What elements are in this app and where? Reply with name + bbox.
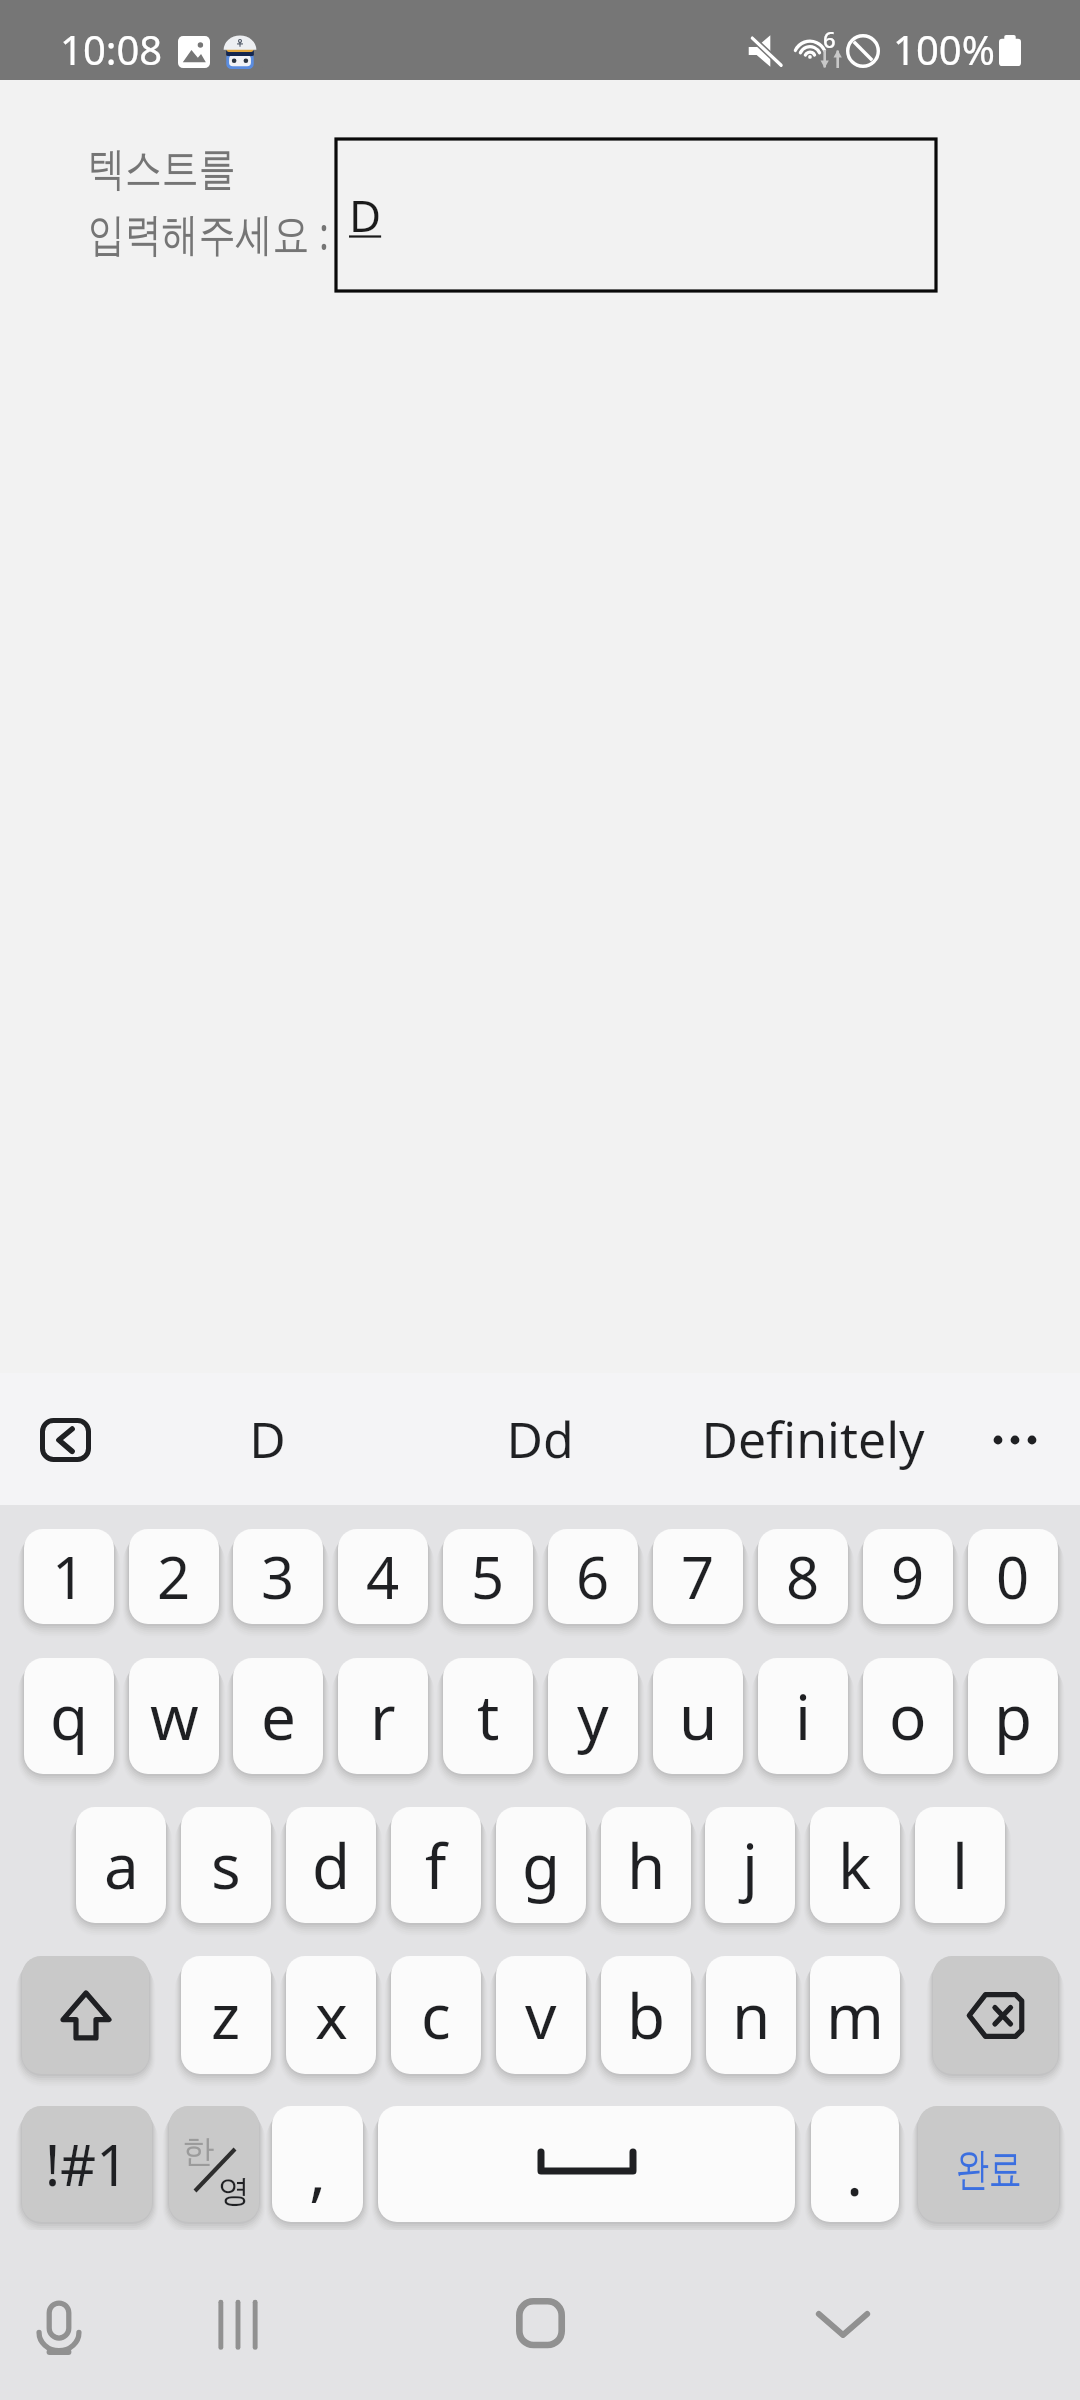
staticText: k (838, 1823, 872, 1907)
staticText: l (952, 1823, 968, 1907)
staticText: d (312, 1823, 351, 1907)
staticText: 9 (891, 1537, 925, 1616)
button[interactable]: f (391, 1807, 481, 1923)
staticText: j (742, 1823, 758, 1907)
staticText: 4 (366, 1537, 400, 1616)
staticText: f (425, 1823, 447, 1907)
button[interactable]: a (76, 1807, 166, 1923)
button[interactable]: b (601, 1956, 691, 2074)
staticText: Definitely (701, 1405, 925, 1473)
button[interactable]: D (336, 139, 936, 291)
staticText: g (522, 1823, 561, 1907)
button[interactable]: u (653, 1658, 743, 1774)
button[interactable]: r (338, 1658, 428, 1774)
button[interactable]: Dd (410, 1393, 670, 1485)
button[interactable]: Backspace (933, 1956, 1058, 2074)
staticText: 1 (52, 1537, 86, 1616)
button[interactable]: D (137, 1393, 397, 1485)
button[interactable]: p (968, 1658, 1058, 1774)
staticText: z (211, 1973, 241, 2057)
button[interactable]: t (443, 1658, 533, 1774)
button[interactable]: 완료 (918, 2106, 1059, 2222)
button[interactable]: m (810, 1956, 900, 2074)
staticText: o (889, 1674, 927, 1758)
button[interactable]: j (705, 1807, 795, 1923)
button[interactable]: Space (378, 2106, 795, 2222)
staticText: m (826, 1973, 884, 2057)
button[interactable]: !#1 (22, 2106, 152, 2222)
staticText: 텍스트를 (88, 141, 236, 198)
staticText: s (211, 1823, 241, 1907)
button[interactable]: q (24, 1658, 114, 1774)
button[interactable]: z (181, 1956, 271, 2074)
staticText: v (525, 1973, 557, 2057)
button[interactable]: o (863, 1658, 953, 1774)
staticText: r (370, 1674, 396, 1758)
staticText: u (679, 1674, 718, 1758)
staticText: 영 (218, 2171, 250, 2211)
staticText: !#1 (45, 2126, 129, 2202)
button[interactable]: 7 (653, 1529, 743, 1624)
staticText: 6 (576, 1537, 610, 1616)
button[interactable]: x (286, 1956, 376, 2074)
button[interactable]: 2 (129, 1529, 219, 1624)
button[interactable]: 9 (863, 1529, 953, 1624)
button[interactable]: y (548, 1658, 638, 1774)
staticText: Dd (506, 1405, 574, 1473)
staticText: 100% (893, 22, 995, 76)
staticText: b (627, 1973, 666, 2057)
button[interactable]: Recent apps (182, 2269, 294, 2381)
button[interactable]: d (286, 1807, 376, 1923)
button[interactable]: i (758, 1658, 848, 1774)
staticText: 완료 (956, 2142, 1022, 2197)
staticText: 6 (823, 24, 836, 54)
button[interactable]: 1 (24, 1529, 114, 1624)
button[interactable]: Previous suggestions (40, 1418, 91, 1462)
button[interactable]: w (129, 1658, 219, 1774)
staticText: x (315, 1973, 348, 2057)
button[interactable]: 4 (338, 1529, 428, 1624)
button[interactable]: c (391, 1956, 481, 2074)
button[interactable]: Definitely (683, 1393, 943, 1485)
button[interactable]: 5 (443, 1529, 533, 1624)
button[interactable]: Home (484, 2268, 596, 2380)
staticText: i (795, 1674, 811, 1758)
staticText: a (104, 1823, 139, 1907)
staticText: D (249, 1405, 286, 1473)
button[interactable]: . (811, 2106, 899, 2222)
button[interactable]: h (601, 1807, 691, 1923)
staticText: p (994, 1674, 1033, 1758)
button[interactable]: , (272, 2106, 363, 2222)
button[interactable]: 0 (968, 1529, 1058, 1624)
button[interactable]: 6 (548, 1529, 638, 1624)
staticText: 3 (261, 1537, 295, 1616)
button[interactable]: Shift (22, 1956, 149, 2074)
button[interactable]: v (496, 1956, 586, 2074)
button[interactable]: Voice input (3, 2274, 115, 2386)
staticText: 한 (182, 2131, 214, 2171)
button[interactable]: Korean English toggle (169, 2106, 259, 2222)
button[interactable]: 8 (758, 1529, 848, 1624)
staticText: q (50, 1674, 89, 1758)
button[interactable]: 3 (233, 1529, 323, 1624)
button[interactable]: s (181, 1807, 271, 1923)
button[interactable]: k (810, 1807, 900, 1923)
staticText: t (477, 1674, 500, 1758)
staticText: 2 (157, 1537, 191, 1616)
button[interactable]: e (233, 1658, 323, 1774)
button[interactable]: More suggestions (968, 1409, 1064, 1469)
button[interactable]: g (496, 1807, 586, 1923)
staticText: 7 (681, 1537, 715, 1616)
staticText: n (732, 1973, 771, 2057)
staticText: . (846, 2128, 864, 2215)
button[interactable]: n (706, 1956, 796, 2074)
button[interactable]: Hide keyboard (787, 2267, 899, 2379)
staticText: 입력해주세요 : (88, 202, 329, 263)
staticText: h (627, 1823, 666, 1907)
button[interactable]: l (915, 1807, 1005, 1923)
staticText: y (577, 1674, 609, 1758)
staticText: , (309, 2127, 327, 2214)
staticText: D (349, 185, 382, 245)
staticText: c (421, 1973, 451, 2057)
staticText: 5 (471, 1537, 505, 1616)
